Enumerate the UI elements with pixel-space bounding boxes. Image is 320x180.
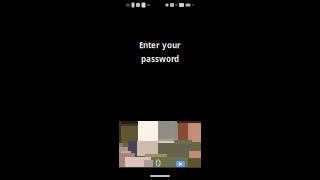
staticText: Enter your: [139, 40, 181, 50]
button[interactable]: Submit password: [176, 161, 185, 167]
staticText: 0: [155, 157, 160, 169]
staticText: password: [141, 53, 179, 64]
